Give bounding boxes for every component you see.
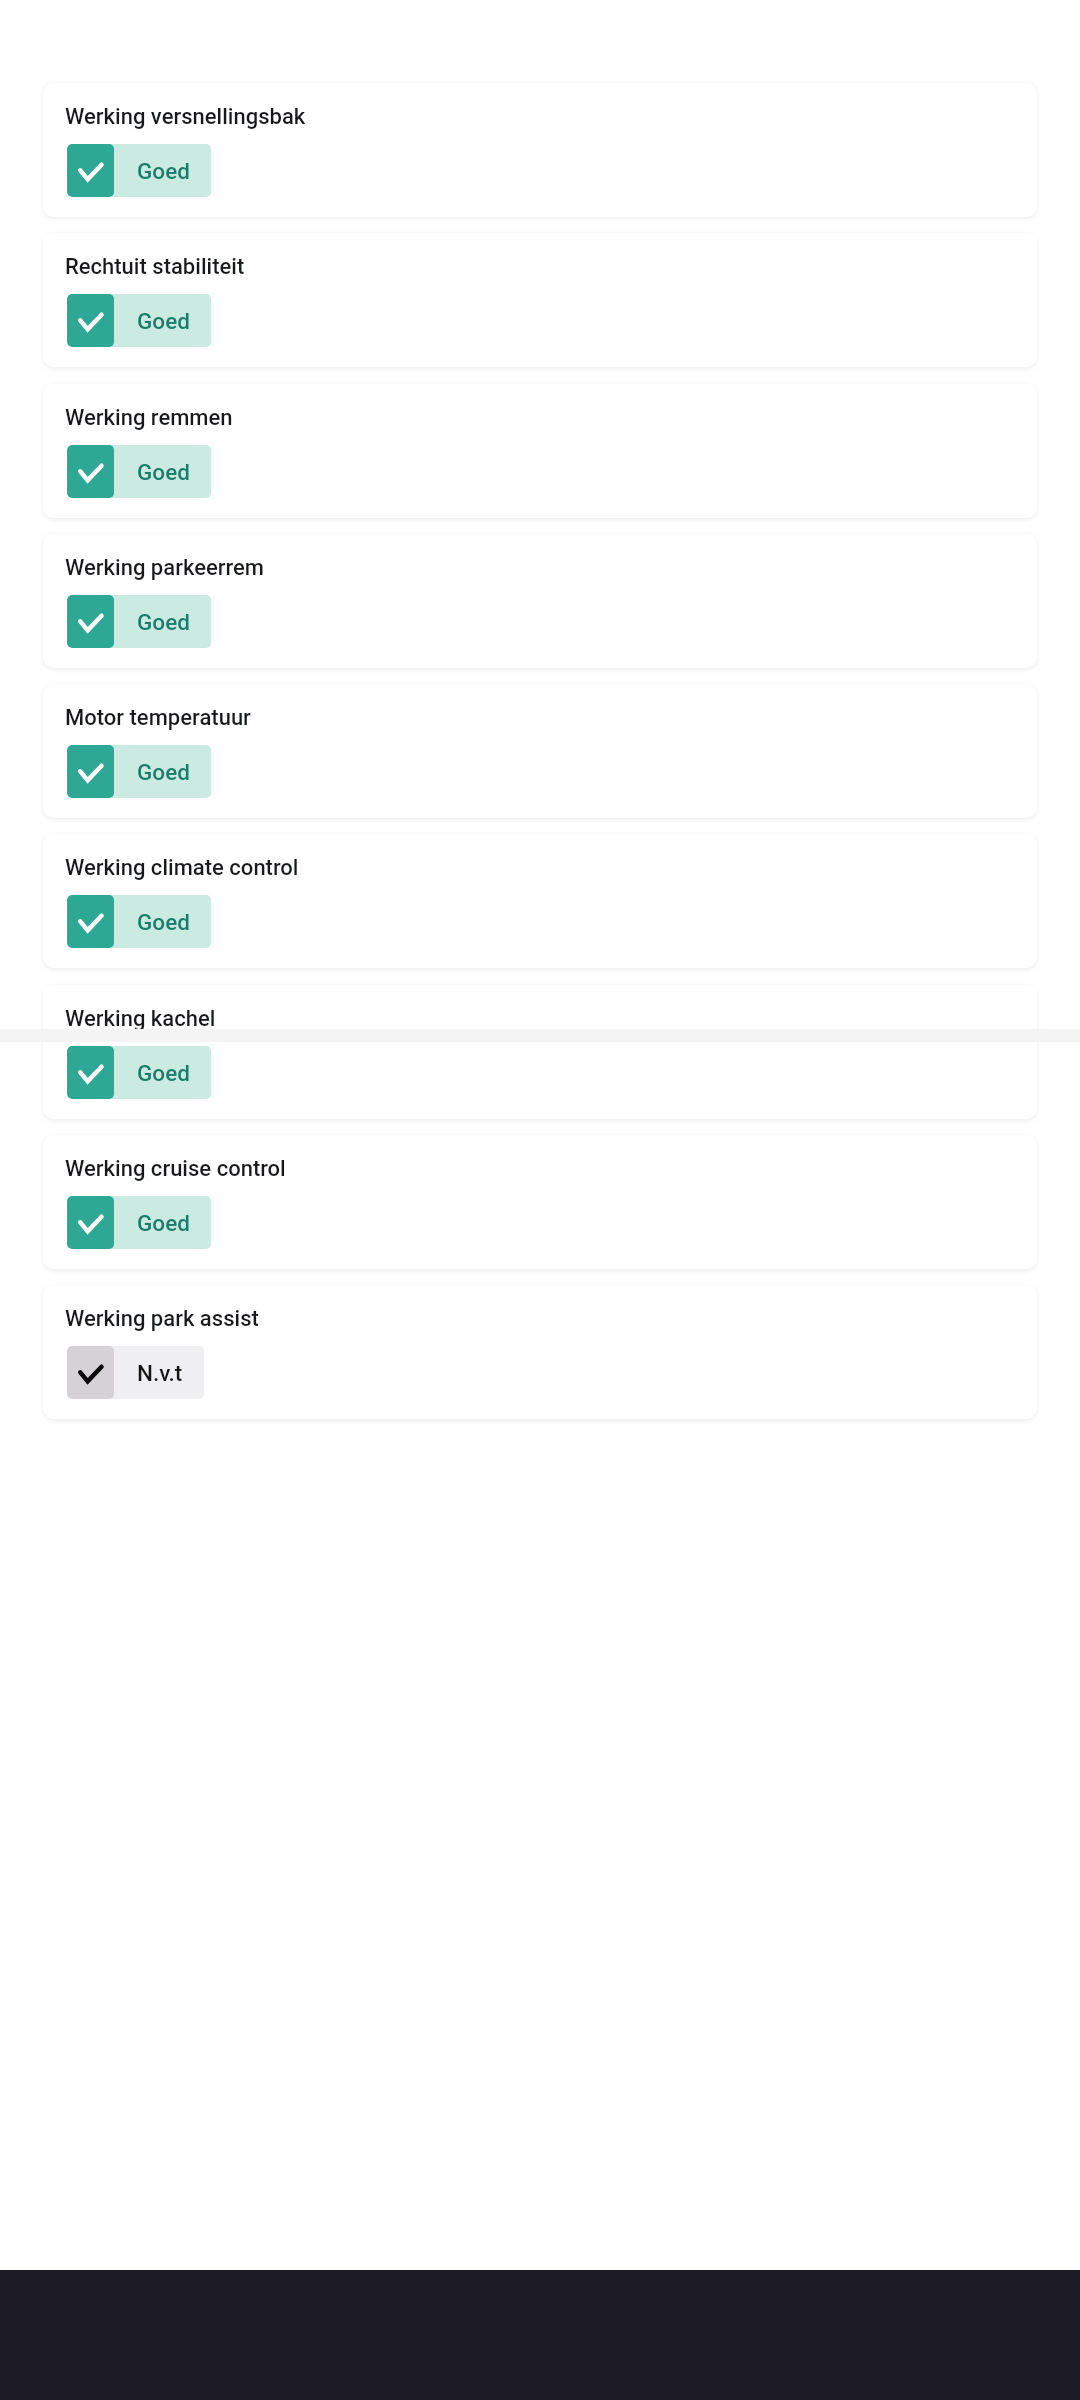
button[interactable]: Geselecteerd: Goed [67,595,211,648]
button[interactable]: Geselecteerd: Goed [67,445,211,498]
staticText: Werking parkeerrem [65,555,265,581]
button[interactable]: Werking remmen [43,384,1037,518]
button[interactable]: Geselecteerd: N.v.t [67,1346,204,1399]
staticText: Motor temperatuur [65,705,251,731]
staticText: Werking climate control [65,855,299,881]
button[interactable]: Geselecteerd: Goed [67,1046,211,1099]
other: Geselecteerd: Goed [67,895,114,948]
button[interactable]: Werking versnellingsbak [43,83,1037,217]
button[interactable]: Werking kachel [43,985,1037,1119]
staticText: N.v.t [137,1360,183,1386]
staticText: Werking kachel [65,1006,216,1032]
button[interactable]: Geselecteerd: Goed [67,294,211,347]
button[interactable]: Geselecteerd: Goed [67,144,211,197]
button[interactable]: Werking cruise control [43,1135,1037,1269]
other: Geselecteerd: N.v.t [67,1346,114,1399]
button[interactable]: Werking parkeerrem [43,534,1037,668]
staticText: Goed [137,459,190,485]
button[interactable]: Geselecteerd: Goed [67,745,211,798]
button[interactable]: Rechtuit stabiliteit [43,233,1037,367]
button[interactable]: Werking park assist [43,1285,1037,1419]
staticText: Goed [137,909,190,935]
other: Geselecteerd: Goed [67,144,114,197]
staticText: Goed [137,759,190,785]
staticText: Werking cruise control [65,1156,286,1182]
other: Geselecteerd: Goed [67,1196,114,1249]
button[interactable]: Geselecteerd: Goed [67,1196,211,1249]
other: Geselecteerd: Goed [67,294,114,347]
staticText: Goed [137,609,190,635]
staticText: Werking versnellingsbak [65,104,306,130]
staticText: Werking park assist [65,1306,259,1332]
staticText: Goed [137,1210,190,1236]
staticText: Rechtuit stabiliteit [65,254,245,280]
staticText: Goed [137,158,190,184]
button[interactable]: Werking climate control [43,834,1037,968]
other: Geselecteerd: Goed [67,745,114,798]
staticText: Werking remmen [65,405,233,431]
other: Geselecteerd: Goed [67,595,114,648]
other: Geselecteerd: Goed [67,445,114,498]
button[interactable]: Motor temperatuur [43,684,1037,818]
staticText: Goed [137,308,190,334]
button[interactable]: Geselecteerd: Goed [67,895,211,948]
staticText: Goed [137,1060,190,1086]
other: Geselecteerd: Goed [67,1046,114,1099]
